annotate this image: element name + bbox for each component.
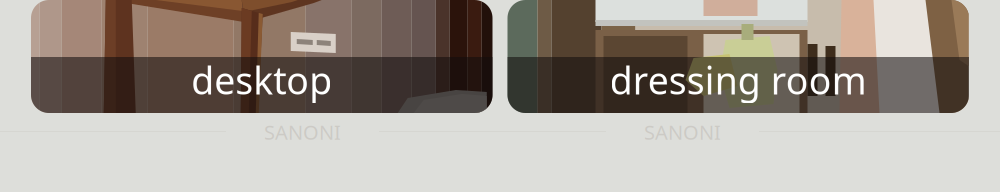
staticText: SANONI: [264, 119, 341, 145]
staticText: dressing room: [610, 55, 867, 105]
staticText: SANONI: [644, 119, 721, 145]
button[interactable]: dressing room: [507, 0, 969, 113]
staticText: desktop: [191, 55, 332, 105]
button[interactable]: desktop: [31, 0, 492, 113]
